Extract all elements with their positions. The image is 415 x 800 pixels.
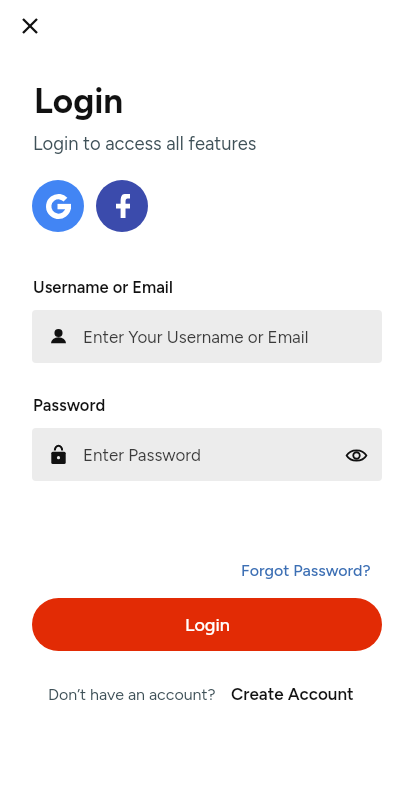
button[interactable]: Create Account [231,684,354,704]
staticText: Login [185,614,230,636]
button[interactable]: Close [10,6,50,46]
button[interactable]: Show password [340,439,372,471]
staticText: Login to access all features [33,133,257,155]
button[interactable]: Forgot Password? [241,561,371,580]
button[interactable]: Login [32,598,382,651]
button[interactable]: Enter Password [32,428,382,481]
staticText: Forgot Password? [241,561,371,580]
staticText: Password [33,395,106,415]
staticText: Enter Password [83,445,202,465]
staticText: Create Account [231,684,354,704]
button[interactable]: Continue with Facebook [96,180,148,232]
staticText: Enter Your Username or Email [83,327,309,347]
staticText: Username or Email [33,277,173,297]
button[interactable]: Enter Your Username or Email [32,310,382,363]
staticText: Don’t have an account? [48,685,216,704]
staticText: Login [34,80,124,122]
button[interactable]: Continue with Google [32,180,84,232]
